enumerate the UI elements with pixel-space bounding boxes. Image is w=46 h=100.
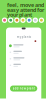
button[interactable]: Plant: [9, 57, 38, 60]
button[interactable]: Category: [14, 17, 20, 23]
button[interactable]: Plant: [9, 64, 38, 67]
button[interactable]: Category: [8, 17, 13, 23]
button[interactable]: Category: [20, 17, 26, 23]
button[interactable]: Plant: [9, 51, 38, 54]
button[interactable]: Category: [33, 17, 38, 23]
staticText: easy attend for: [7, 6, 44, 13]
button[interactable]: Category: [26, 17, 32, 23]
staticText: my plants: [17, 35, 31, 39]
staticText: feel, move and: [7, 1, 44, 8]
button[interactable]: add new plant: [10, 85, 37, 91]
staticText: add new plant: [13, 87, 35, 90]
button[interactable]: Plant: [9, 44, 38, 47]
button[interactable]: Category: [2, 17, 7, 23]
staticText: your plant: [7, 11, 32, 18]
button[interactable]: Category: [39, 17, 44, 23]
